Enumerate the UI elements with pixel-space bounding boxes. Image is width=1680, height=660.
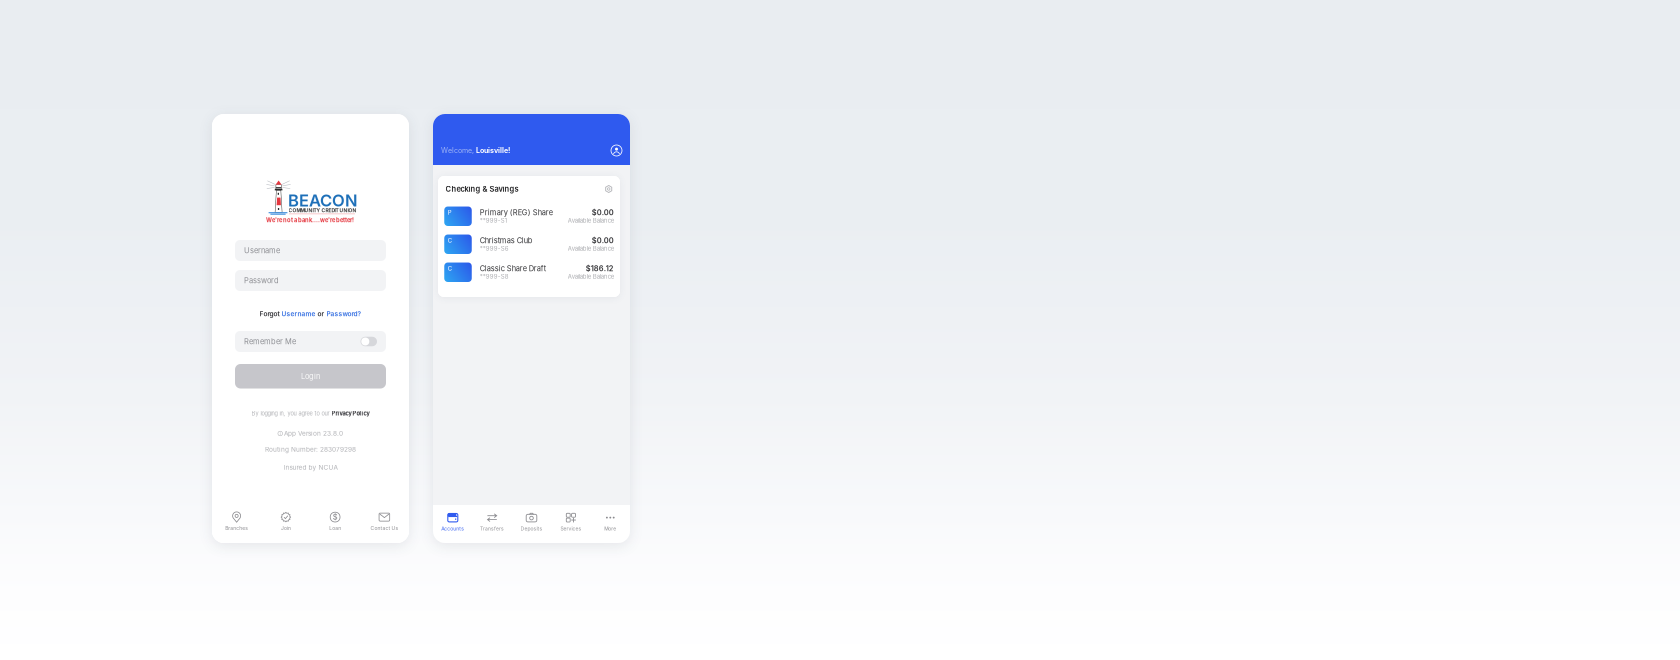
staticText: Services [560,526,581,532]
button[interactable]: Password [235,270,386,291]
button[interactable]: Login [235,364,386,388]
staticText: Loan [329,525,341,531]
button[interactable]: Accounts [433,505,472,543]
staticText: C [448,237,452,244]
staticText: $0.00 [592,208,614,217]
staticText: Contact Us [370,525,398,531]
staticText: Username [244,246,280,255]
staticText: Privacy Policy [331,410,369,417]
staticText: Louisville! [474,146,510,155]
button[interactable]: C [438,234,605,254]
button[interactable]: $ [310,503,360,543]
staticText: or [315,310,326,318]
staticText: $ [333,513,338,522]
staticText: Checking & Savings [445,184,518,193]
staticText: **999-S1 [480,217,507,224]
staticText: Available Balance [568,273,614,280]
staticText: Join [281,525,291,531]
staticText: **999-S6 [480,245,509,252]
button[interactable]: More [591,505,630,543]
staticText: $186.12 [586,264,614,273]
button[interactable]: Username [235,240,386,261]
staticText: More [604,526,616,532]
staticText: Transfers [480,526,504,532]
staticText: Password? [326,310,361,318]
staticText: Remember Me [244,337,296,346]
button[interactable]: Services [551,505,591,543]
button[interactable]: Forgot [235,308,386,320]
staticText: Accounts [441,526,464,532]
button[interactable]: Remember Me [235,331,386,352]
button[interactable]: Transfers [472,505,512,543]
staticText: Available Balance [568,217,614,224]
button[interactable]: Deposits [512,505,551,543]
button[interactable]: Profile [611,145,622,156]
staticText: Username [281,310,315,318]
staticText: Available Balance [568,245,614,252]
staticText: COMMUNITY CREDIT UNION [288,208,356,213]
staticText: App Version 23.8.0 [284,430,343,437]
staticText: Password [244,276,279,285]
staticText: Login [301,372,320,381]
staticText: Routing Number: 283079298 [265,446,356,453]
staticText: P [448,209,452,216]
staticText: C [448,265,452,272]
staticText: $0.00 [592,236,614,245]
staticText: **999-S8 [480,273,509,280]
staticText: Classic Share Draft [480,264,546,273]
button[interactable]: Join [261,503,310,543]
staticText: Christmas Club [480,236,533,245]
staticText: Forgot [259,310,281,318]
button[interactable]: Account settings [605,185,612,193]
staticText: Insured by NCUA [283,464,337,471]
button[interactable]: Contact Us [360,503,409,543]
button[interactable]: P [438,206,605,226]
button[interactable]: C [438,262,605,282]
staticText: By logging in, you agree to our [251,410,331,417]
staticText: BEACON [288,190,358,210]
staticText: Deposits [520,526,542,532]
staticText: We're not a bank....we're better! [266,217,354,223]
staticText: Welcome, [441,146,474,155]
staticText: Primary (REG) Share [480,208,553,217]
staticText: Branches [225,525,248,531]
button[interactable]: Branches [212,503,261,543]
